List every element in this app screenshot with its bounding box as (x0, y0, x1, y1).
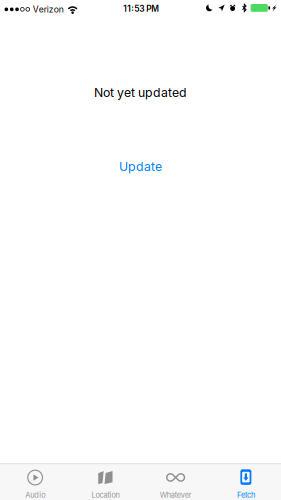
staticText: Update (119, 159, 162, 174)
staticText: Verizon (33, 4, 64, 14)
staticText: Fetch (237, 490, 255, 499)
staticText: 11:53 PM (123, 3, 159, 14)
staticText: Whatever (160, 490, 192, 499)
button[interactable]: Update (95, 156, 185, 176)
staticText: Not yet updated (94, 85, 187, 100)
button[interactable]: Location (70, 463, 140, 499)
staticText: Location (91, 490, 119, 499)
button[interactable]: Fetch (211, 463, 281, 499)
button[interactable]: Whatever (140, 463, 211, 499)
staticText: Audio (25, 490, 45, 499)
button[interactable]: Audio (0, 463, 70, 499)
